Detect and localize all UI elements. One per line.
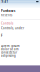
staticText: Lorem ipsum [1, 44, 20, 48]
staticText: adipiscing [1, 54, 16, 57]
staticText: dolor sit am [1, 47, 19, 51]
staticText: Controls [1, 22, 13, 25]
staticText: Recents [1, 13, 12, 17]
staticText: consectetur [1, 51, 17, 54]
staticText: Controls, under [1, 26, 24, 30]
staticText: 9:41 [1, 0, 8, 3]
staticText: Purchases [1, 9, 15, 13]
staticText: F [1, 34, 2, 37]
